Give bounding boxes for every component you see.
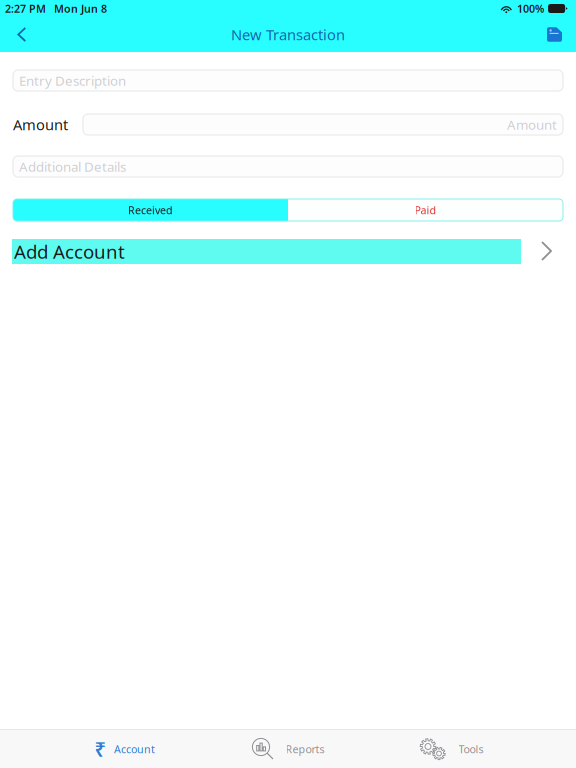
staticText: New Transaction bbox=[231, 25, 345, 44]
button[interactable]: ₹ bbox=[43, 730, 206, 768]
staticText: Mon Jun 8 bbox=[54, 1, 107, 16]
staticText: Add Account bbox=[14, 239, 125, 264]
staticText: Amount bbox=[507, 116, 557, 133]
button[interactable]: Add Account bbox=[0, 239, 576, 264]
staticText: Amount bbox=[13, 115, 68, 134]
staticText: Paid bbox=[414, 203, 436, 217]
button[interactable]: Save bbox=[533, 19, 576, 50]
button[interactable]: Paid bbox=[288, 199, 563, 221]
button[interactable]: Tools bbox=[369, 730, 532, 768]
button[interactable]: Received bbox=[13, 199, 288, 221]
button[interactable]: Back bbox=[0, 19, 41, 50]
staticText: Reports bbox=[285, 742, 324, 756]
staticText: ₹ bbox=[94, 736, 105, 762]
staticText: Tools bbox=[458, 742, 483, 756]
staticText: 2:27 PM bbox=[5, 1, 46, 16]
staticText: Entry Description bbox=[19, 72, 126, 89]
staticText: Additional Details bbox=[19, 158, 126, 175]
button[interactable]: Reports bbox=[206, 730, 369, 768]
staticText: Account bbox=[114, 742, 155, 756]
staticText: Received bbox=[128, 203, 173, 217]
staticText: 100% bbox=[517, 1, 544, 16]
